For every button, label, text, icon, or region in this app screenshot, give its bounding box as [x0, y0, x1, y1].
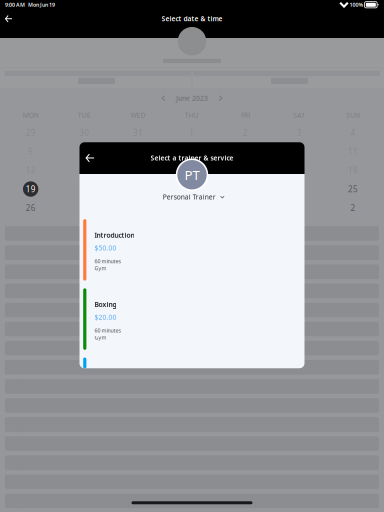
button[interactable]: 26 — [4, 198, 57, 217]
button[interactable]: 25 — [326, 180, 380, 198]
staticText: 13 — [79, 165, 89, 175]
button[interactable]: 1 — [272, 198, 326, 217]
button[interactable]: Boxing — [83, 288, 304, 357]
staticText: 15 — [187, 165, 197, 175]
button[interactable]: 23 — [219, 180, 272, 198]
staticText: 18 — [348, 165, 358, 175]
staticText: Gym — [94, 334, 106, 341]
staticText: Gym — [94, 265, 106, 272]
staticText: 29 — [26, 127, 36, 138]
staticText: June 2023 — [176, 94, 208, 103]
button[interactable]: 28 — [111, 198, 165, 217]
button[interactable]: Next month — [215, 93, 226, 104]
staticText: 20 — [79, 184, 89, 194]
button[interactable]: 24 — [272, 180, 326, 198]
staticText: SAT — [293, 111, 305, 120]
staticText: 1 — [189, 127, 194, 138]
staticText: PT — [184, 166, 199, 184]
button[interactable]: 21 — [111, 180, 165, 198]
staticText: WED — [131, 111, 146, 120]
staticText: 9:00 AM Mon Jun 19 — [5, 1, 55, 8]
staticText: 16 — [240, 165, 250, 175]
staticText: 2 — [243, 127, 248, 138]
button[interactable]: 8 — [165, 142, 219, 161]
button[interactable]: Introduction — [83, 219, 304, 288]
button[interactable]: 9 — [219, 142, 272, 161]
button[interactable]: 22 — [165, 180, 219, 198]
button[interactable]: Personal Trainer — [159, 174, 229, 219]
staticText: 8 — [189, 146, 194, 157]
staticText: 3 — [297, 127, 302, 138]
staticText: Introduction — [94, 231, 134, 240]
staticText: 14 — [133, 165, 143, 175]
staticText: MON — [23, 111, 39, 120]
staticText: Select a trainer & service — [150, 153, 233, 162]
staticText: 19 — [26, 184, 36, 194]
button[interactable]: Previous month — [158, 93, 169, 104]
staticText: THU — [185, 111, 199, 120]
staticText: 6 — [82, 146, 87, 157]
staticText: 12 — [26, 165, 36, 175]
staticText: 17 — [294, 165, 304, 175]
staticText: 26 — [26, 202, 36, 213]
staticText: 31 — [133, 127, 143, 138]
staticText: 25 — [348, 184, 358, 194]
staticText: 60 minutes — [94, 327, 121, 334]
staticText: SUN — [346, 111, 360, 120]
staticText: 11 — [348, 146, 358, 157]
staticText: 22 — [187, 184, 197, 194]
button[interactable]: 20 — [57, 180, 111, 198]
staticText: 30 — [79, 127, 89, 138]
staticText: Select date & time — [161, 14, 222, 23]
staticText: 5 — [28, 146, 33, 157]
staticText: $20.00 — [94, 313, 116, 322]
button[interactable]: 16 — [219, 161, 272, 180]
button[interactable]: 7 — [111, 142, 165, 161]
button[interactable]: Back — [79, 145, 102, 170]
staticText: Personal Trainer — [163, 192, 216, 201]
button[interactable]: 13 — [57, 161, 111, 180]
staticText: 100% — [349, 1, 365, 8]
button[interactable]: 15 — [165, 161, 219, 180]
button[interactable]: 6 — [57, 142, 111, 161]
button[interactable]: 17 — [272, 161, 326, 180]
staticText: TUE — [78, 111, 91, 120]
staticText: $50.00 — [94, 244, 116, 252]
staticText: 60 minutes — [94, 258, 121, 265]
staticText: 2 — [350, 202, 355, 213]
staticText: 27 — [79, 202, 89, 213]
staticText: 4 — [350, 127, 355, 138]
button[interactable]: 19 — [4, 180, 57, 198]
button[interactable]: Back — [0, 10, 20, 27]
button[interactable]: 14 — [111, 161, 165, 180]
staticText: FRI — [241, 111, 250, 120]
staticText: Boxing — [94, 300, 116, 309]
button[interactable]: 27 — [57, 198, 111, 217]
button[interactable]: 29 — [165, 198, 219, 217]
button[interactable]: 2 — [326, 198, 380, 217]
button[interactable]: 10 — [272, 142, 326, 161]
